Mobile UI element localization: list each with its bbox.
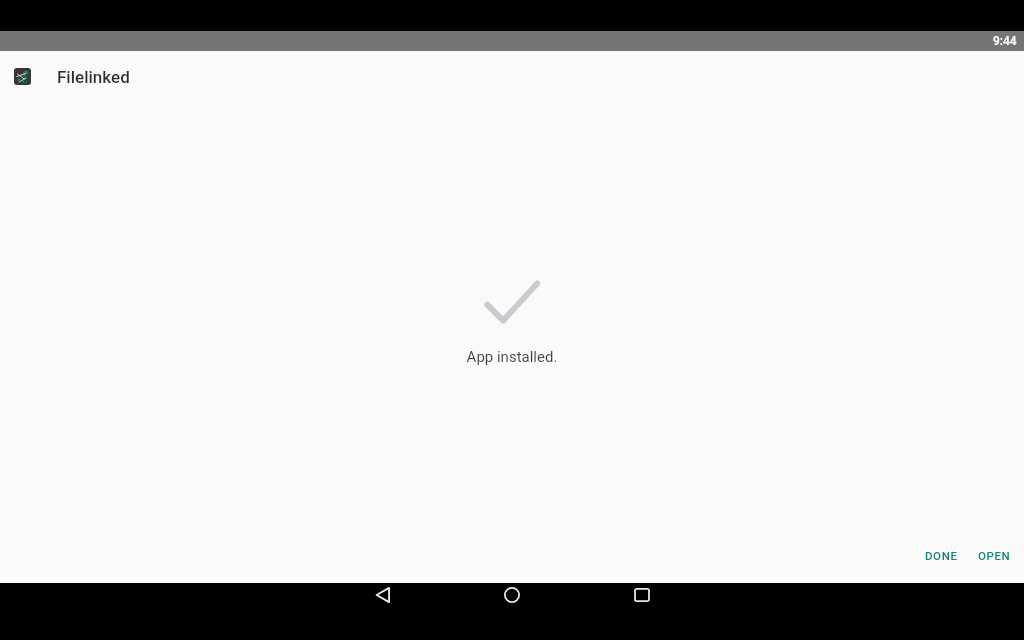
staticText: OPEN: [978, 549, 1011, 562]
staticText: DONE: [925, 549, 958, 562]
button[interactable]: Back: [360, 583, 406, 607]
staticText: App installed.: [0, 348, 1024, 366]
button[interactable]: Filelinked app icon: [14, 51, 1024, 102]
button[interactable]: Recent apps: [619, 583, 665, 607]
button[interactable]: Filelinked app icon: [14, 68, 31, 85]
button[interactable]: Home: [489, 583, 535, 607]
button[interactable]: OPEN: [970, 542, 1019, 569]
staticText: 9:44: [993, 34, 1017, 48]
staticText: Filelinked: [57, 67, 130, 87]
button[interactable]: DONE: [917, 542, 966, 569]
